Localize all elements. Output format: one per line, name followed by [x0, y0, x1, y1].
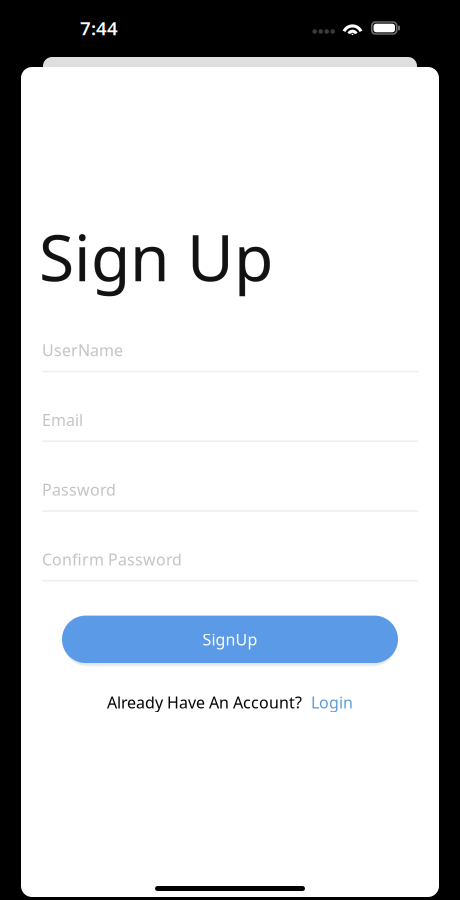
- staticText: Email: [42, 409, 83, 430]
- button[interactable]: Login: [311, 692, 353, 713]
- staticText: Password: [42, 479, 116, 500]
- staticText: 7:44: [80, 16, 118, 40]
- staticText: Already Have An Account?: [107, 692, 302, 713]
- button[interactable]: SignUp: [62, 616, 398, 663]
- staticText: Sign Up: [39, 214, 273, 299]
- staticText: SignUp: [202, 629, 257, 650]
- staticText: UserName: [42, 339, 123, 361]
- staticText: Login: [311, 692, 353, 713]
- staticText: Confirm Password: [42, 549, 182, 570]
